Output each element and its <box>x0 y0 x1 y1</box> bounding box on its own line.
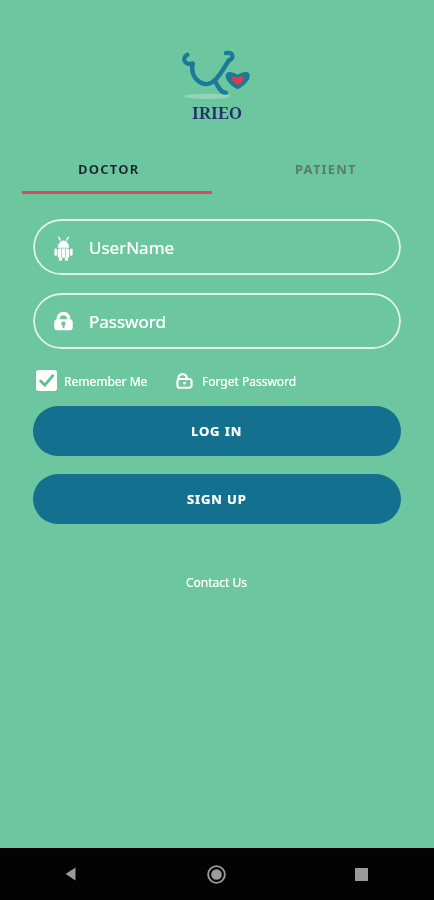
button[interactable]: DOCTOR <box>0 148 217 194</box>
staticText: Contact Us <box>186 574 248 590</box>
staticText: Forget Password <box>202 373 297 389</box>
staticText: Remember Me <box>64 373 148 389</box>
staticText: PATIENT <box>295 160 357 178</box>
button[interactable]: Contact Us <box>174 568 260 596</box>
other: Password <box>52 310 75 333</box>
staticText: DOCTOR <box>78 160 140 178</box>
button[interactable]: Username <box>33 219 401 275</box>
other: Forget Password <box>175 371 194 390</box>
button[interactable]: Back <box>0 848 144 900</box>
button[interactable]: PATIENT <box>217 148 434 194</box>
button[interactable]: Password <box>33 293 401 349</box>
staticText: UserName <box>89 236 175 259</box>
button[interactable]: LOG IN <box>33 406 401 456</box>
button[interactable]: Forget Password <box>175 367 297 394</box>
other: Username <box>52 236 75 259</box>
staticText: IRIEO <box>192 101 243 124</box>
staticText: Password <box>89 310 166 333</box>
staticText: SIGN UP <box>187 490 247 508</box>
button[interactable]: Home <box>144 848 289 900</box>
staticText: LOG IN <box>191 422 243 440</box>
button[interactable]: SIGN UP <box>33 474 401 524</box>
button[interactable]: Remember Me <box>36 366 148 395</box>
button[interactable]: Recent apps <box>289 848 434 900</box>
